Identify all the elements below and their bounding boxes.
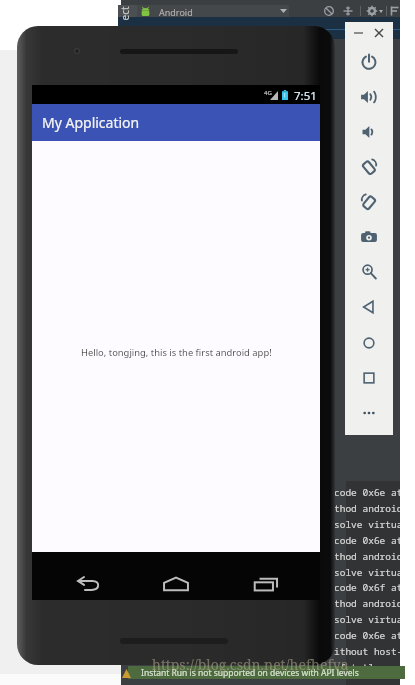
- button[interactable]: Take screenshot: [357, 225, 381, 249]
- staticText: thod android v: [334, 550, 414, 563]
- button[interactable]: Back: [64, 566, 112, 602]
- button[interactable]: Minimize: [350, 25, 366, 41]
- staticText: Android: [159, 6, 193, 18]
- staticText: https://blog.csdn.net/hefhefva: [152, 655, 349, 674]
- button[interactable]: Back: [357, 295, 381, 319]
- button[interactable]: ect: [118, 5, 137, 17]
- staticText: ect: [117, 5, 129, 20]
- staticText: solve virtual: [334, 613, 409, 626]
- staticText: code 0x6f at: [334, 581, 409, 594]
- staticText: My Application: [42, 113, 140, 132]
- button[interactable]: Volume down: [357, 120, 381, 144]
- staticText: Hello, tongjing, this is the first andro…: [81, 346, 272, 359]
- staticText: 7:51: [294, 88, 317, 104]
- staticText: solve virtual: [334, 518, 409, 531]
- staticText: ithout host-sid: [334, 645, 415, 658]
- button[interactable]: Home: [357, 331, 381, 355]
- button[interactable]: Overview: [357, 366, 381, 390]
- staticText: thod android v: [334, 502, 414, 515]
- button[interactable]: Instant Run is not supported on devices …: [128, 666, 405, 679]
- button[interactable]: My Application: [32, 104, 320, 141]
- staticText: efstatlva: [334, 661, 386, 674]
- button[interactable]: Rotate left: [357, 155, 381, 179]
- button[interactable]: Rotate right: [357, 190, 381, 214]
- staticText: code 0x6e at: [334, 534, 409, 547]
- button[interactable]: More options: [357, 401, 381, 425]
- staticText: code 0x6e at: [334, 486, 409, 499]
- button[interactable]: Close: [371, 25, 387, 41]
- button[interactable]: Home: [152, 566, 200, 602]
- staticText: code 0x6e at: [334, 629, 409, 642]
- staticText: thod android v: [334, 597, 414, 610]
- button[interactable]: Power: [357, 50, 381, 74]
- staticText: solve virtual: [334, 566, 409, 579]
- staticText: 4G: [264, 89, 272, 97]
- button[interactable]: Zoom: [357, 260, 381, 284]
- button[interactable]: Volume up: [357, 85, 381, 109]
- button[interactable]: Recent apps: [242, 566, 290, 602]
- button[interactable]: [137, 5, 289, 17]
- staticText: Instant Run is not supported on devices …: [141, 667, 359, 679]
